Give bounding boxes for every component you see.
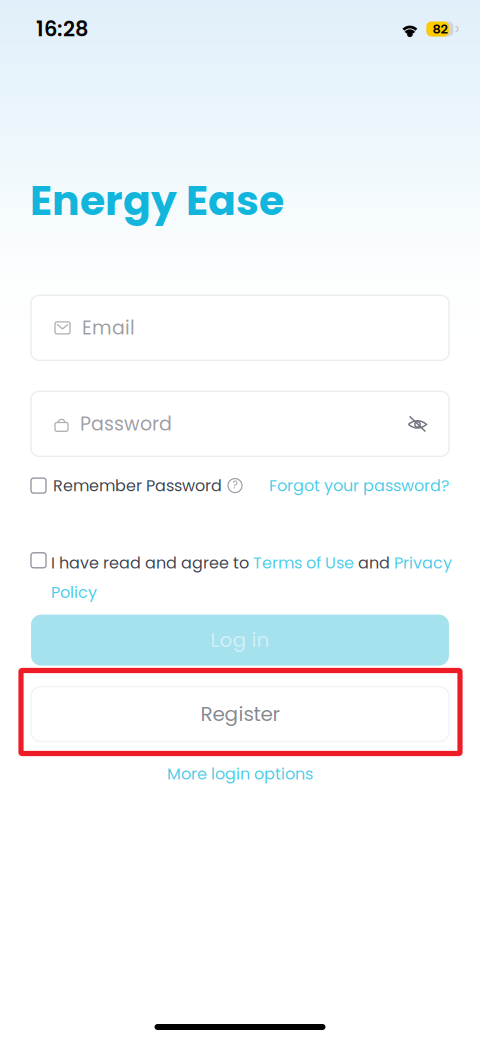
button[interactable]: Register — [31, 687, 449, 742]
staticText: More login options — [167, 763, 313, 785]
staticText: I have read and agree to — [51, 552, 253, 574]
staticText: Log in — [210, 626, 269, 654]
staticText: 82 — [432, 20, 447, 38]
button[interactable]: I have read and agree to — [0, 552, 480, 604]
button[interactable]: Show password — [407, 415, 428, 432]
button[interactable]: Remember Password — [31, 474, 242, 497]
staticText: Remember Password — [53, 474, 222, 497]
staticText: Energy Ease — [30, 172, 284, 229]
staticText: Forgot your password? — [269, 474, 449, 497]
staticText: ? — [232, 478, 237, 492]
button[interactable]: Log in — [31, 615, 449, 666]
staticText: Email — [82, 315, 135, 341]
button[interactable]: More login options — [167, 763, 313, 785]
staticText: 16:28 — [36, 14, 89, 44]
staticText: Password — [80, 411, 172, 437]
staticText: and — [354, 552, 394, 574]
staticText: Register — [200, 700, 279, 728]
staticText: Policy — [51, 581, 97, 604]
staticText: Terms of Use — [253, 552, 354, 574]
staticText: Privacy — [394, 552, 452, 574]
button[interactable]: Forgot your password? — [269, 474, 449, 497]
